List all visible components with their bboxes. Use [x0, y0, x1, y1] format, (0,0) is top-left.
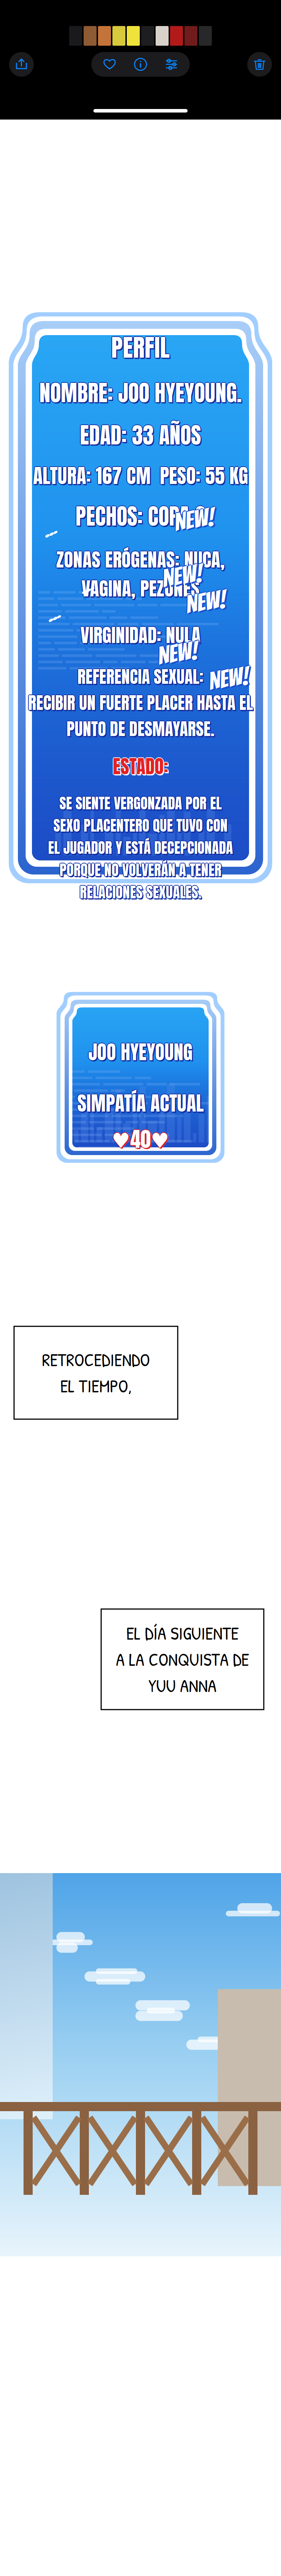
staticText: JOO HYEYOUNG — [89, 1038, 193, 1067]
staticText: VAGINA, PEZONES — [83, 576, 201, 604]
staticText: ALTURA: 167 CM PESO: 55 KG — [34, 461, 249, 491]
staticText: SEXO PLACENTERO QUE TUVO CON — [54, 815, 228, 836]
button[interactable]: Delete — [247, 52, 272, 77]
staticText: NEW! — [186, 589, 226, 615]
staticText: NEW! — [185, 588, 226, 614]
staticText: RELACIONES SEXUALES. — [79, 881, 201, 903]
staticText: NEW! — [175, 508, 215, 534]
staticText: SEXO PLACENTERO QUE TUVO CON — [54, 816, 229, 838]
staticText: PUNTO DE DESMAYARSE. — [67, 715, 214, 741]
staticText: SEXO PLACENTERO QUE TUVO CON — [53, 815, 228, 837]
staticText: RECIBIR UN FUERTE PLACER HASTA EL — [28, 691, 253, 716]
staticText: PECHOS: COPA C — [76, 500, 205, 533]
staticText: SE SIENTE VERGONZADA POR EL — [60, 794, 223, 815]
staticText: EL JUGADOR Y ESTÁ DECEPCIONADA — [48, 837, 233, 859]
staticText: RECIBIR UN FUERTE PLACER HASTA EL — [27, 690, 252, 715]
staticText: NEW! — [163, 564, 203, 590]
staticText: NEW! — [157, 639, 197, 665]
staticText: JOO HYEYOUNG — [88, 1038, 192, 1067]
button[interactable]: Favorite — [100, 54, 119, 75]
staticText: EDAD: 33 AÑOS — [80, 418, 201, 451]
staticText: NEW! — [158, 640, 198, 666]
staticText: PORQUE NO VOLVERÁN A TENER — [60, 859, 222, 881]
staticText: RELACIONES SEXUALES. — [81, 882, 202, 904]
staticText: SIMPATÍA ACTUAL — [77, 1089, 204, 1119]
staticText: ZONAS ERÓGENAS: NUCA, — [56, 546, 225, 574]
staticText: PECHOS: COPA C — [77, 501, 207, 534]
staticText: RETROCEDIENDO — [42, 1348, 150, 1372]
button[interactable]: Info — [131, 54, 150, 75]
staticText: ♥40♥ — [112, 1124, 170, 1155]
staticText: EL TIEMPO, — [60, 1374, 132, 1398]
staticText: ESTADO: — [113, 753, 168, 781]
staticText: NEW! — [163, 563, 203, 589]
staticText: NEW! — [208, 665, 248, 691]
staticText: EDAD: 33 AÑOS — [80, 419, 201, 452]
staticText: SE SIENTE VERGONZADA POR EL — [59, 792, 222, 814]
staticText: NEW! — [174, 506, 214, 532]
staticText: NEW! — [157, 640, 197, 666]
staticText: VIRGINIDAD: NULA — [80, 622, 201, 650]
staticText: SEXO PLACENTERO QUE TUVO CON — [53, 815, 227, 836]
staticText: RECIBIR UN FUERTE PLACER HASTA EL — [28, 689, 253, 715]
staticText: REFERENCIA SEXUAL: — [78, 664, 204, 689]
staticText: ALTURA: 167 CM PESO: 55 KG — [32, 461, 247, 491]
staticText: VAGINA, PEZONES — [81, 574, 200, 603]
staticText: EDAD: 33 AÑOS — [80, 419, 201, 452]
staticText: NEW! — [159, 642, 199, 668]
button[interactable]: Adjust — [162, 54, 181, 75]
staticText: ZONAS ERÓGENAS: NUCA, — [56, 545, 225, 574]
staticText: VIRGINIDAD: NULA — [80, 621, 201, 649]
staticText: PUNTO DE DESMAYARSE. — [68, 717, 215, 743]
staticText: NOMBRE: JOO HYEYOUNG. — [40, 376, 242, 409]
staticText: JOO HYEYOUNG — [88, 1038, 193, 1067]
staticText: VAGINA, PEZONES — [81, 575, 200, 603]
staticText: REFERENCIA SEXUAL: — [77, 664, 203, 689]
staticText: RECIBIR UN FUERTE PLACER HASTA EL — [29, 690, 254, 715]
staticText: ESTADO: — [113, 751, 168, 780]
staticText: VAGINA, PEZONES — [82, 574, 200, 603]
staticText: EL JUGADOR Y ESTÁ DECEPCIONADA — [48, 837, 233, 859]
staticText: ESTADO: — [112, 752, 168, 780]
staticText: SE SIENTE VERGONZADA POR EL — [59, 793, 222, 815]
staticText: NEW! — [207, 666, 247, 692]
staticText: ♥40♥ — [112, 1123, 169, 1154]
staticText: JOO HYEYOUNG — [88, 1037, 193, 1066]
staticText: RECIBIR UN FUERTE PLACER HASTA EL — [28, 690, 253, 715]
staticText: JOO HYEYOUNG — [89, 1039, 194, 1068]
staticText: PUNTO DE DESMAYARSE. — [67, 716, 214, 742]
staticText: VIRGINIDAD: NULA — [80, 620, 201, 648]
staticText: NEW! — [156, 640, 197, 666]
staticText: PERFIL — [111, 329, 170, 366]
staticText: NEW! — [208, 666, 248, 692]
staticText: NEW! — [173, 507, 213, 533]
staticText: ZONAS ERÓGENAS: NUCA, — [57, 547, 226, 575]
button[interactable]: Share — [9, 52, 34, 77]
staticText: PERFIL — [112, 330, 171, 367]
staticText: NOMBRE: JOO HYEYOUNG. — [39, 376, 241, 409]
staticText: ALTURA: 167 CM PESO: 55 KG — [33, 460, 248, 490]
staticText: NEW! — [209, 666, 249, 692]
staticText: PERFIL — [112, 329, 171, 366]
staticText: NEW! — [210, 667, 250, 693]
staticText: PUNTO DE DESMAYARSE. — [66, 716, 214, 742]
staticText: EL JUGADOR Y ESTÁ DECEPCIONADA — [49, 838, 234, 860]
staticText: NEW! — [161, 563, 201, 589]
staticText: VIRGINIDAD: NULA — [81, 622, 202, 650]
staticText: PECHOS: COPA C — [76, 500, 206, 533]
staticText: PORQUE NO VOLVERÁN A TENER — [61, 860, 223, 882]
staticText: RELACIONES SEXUALES. — [80, 881, 201, 902]
staticText: NEW! — [185, 589, 226, 615]
staticText: ♥40♥ — [111, 1124, 169, 1155]
staticText: JOO HYEYOUNG — [88, 1038, 193, 1067]
staticText: ♥40♥ — [112, 1124, 169, 1155]
staticText: PERFIL — [111, 328, 170, 365]
staticText: EL DÍA SIGUIENTE — [126, 1621, 239, 1645]
staticText: REFERENCIA SEXUAL: — [77, 663, 204, 689]
staticText: RELACIONES SEXUALES. — [80, 881, 202, 903]
staticText: PERFIL — [111, 330, 170, 366]
staticText: VIRGINIDAD: NULA — [81, 621, 201, 649]
staticText: NEW! — [162, 562, 202, 588]
staticText: EDAD: 33 AÑOS — [81, 419, 202, 452]
staticText: PUNTO DE DESMAYARSE. — [67, 716, 215, 742]
